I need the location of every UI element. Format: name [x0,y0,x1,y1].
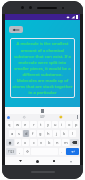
button[interactable]: t [38,121,44,128]
staticText: l [72,131,74,136]
staticText: n [56,140,59,145]
button[interactable]: m [62,139,69,146]
staticText: u [54,122,57,127]
button[interactable]: Recent apps [51,158,57,164]
button[interactable]: ?123 [6,148,16,155]
button[interactable]: v [38,139,45,146]
staticText: i [61,122,63,127]
staticText: q [8,122,11,127]
button[interactable]: Back [9,26,23,33]
button[interactable]: f [30,130,36,137]
button[interactable]: . [59,148,65,155]
staticText: k [63,131,66,136]
button[interactable]: 🙂 [59,115,63,119]
button[interactable]: GIF [40,115,45,119]
button[interactable]: Hide keyboard [68,159,73,164]
button[interactable]: A molecule is the smallest amount of a c… [12,41,73,95]
button[interactable]: o [66,121,72,128]
button[interactable]: a [9,130,15,137]
button[interactable]: q [6,121,13,128]
staticText: x [24,140,27,145]
staticText: p [75,122,78,127]
staticText: f [32,131,34,136]
staticText: c [33,140,35,145]
button[interactable]: u [52,121,58,128]
staticText: . [61,149,63,154]
staticText: b [48,140,51,145]
button[interactable]: y [45,121,51,128]
staticText: v [40,140,43,145]
staticText: s [18,131,20,136]
staticText: g [39,131,42,136]
staticText: w [16,122,20,127]
staticText: A molecule is the smallest amount of a c… [12,41,73,95]
button[interactable]: l [69,130,76,137]
staticText: j [56,131,58,136]
button[interactable]: Backspace [70,139,79,146]
button[interactable]: n [54,139,61,146]
button[interactable]: k [61,130,68,137]
button[interactable]: Enter [66,148,79,155]
staticText: m [64,140,68,145]
button[interactable]: Settings [24,148,30,155]
staticText: e [24,122,27,127]
staticText: o [68,122,71,127]
button[interactable]: Back [17,158,23,164]
button[interactable]: Home [34,158,40,164]
button[interactable]: p [73,121,79,128]
button[interactable]: z [15,139,21,146]
button[interactable]: w [14,121,21,128]
button[interactable]: i [59,121,65,128]
staticText: y [47,122,50,127]
staticText: ?123 [8,150,15,154]
button[interactable]: Google [7,116,10,119]
staticText: h [47,131,50,136]
button[interactable]: e [22,121,29,128]
button[interactable]: g [37,130,44,137]
staticText: r [33,122,35,127]
button[interactable]: r [30,121,37,128]
button[interactable]: d [23,130,29,137]
staticText: t [40,122,42,127]
button[interactable]: c [30,139,37,146]
button[interactable]: Shift [6,139,14,146]
staticText: , [19,149,21,154]
button[interactable]: h [45,130,52,137]
staticText: z [17,140,19,145]
button[interactable]: x [22,139,29,146]
button[interactable]: Search [23,116,26,119]
button[interactable]: , [17,148,23,155]
staticText: a [11,131,14,136]
button[interactable]: j [53,130,60,137]
button[interactable]: b [46,139,53,146]
staticText: d [25,131,28,136]
button[interactable]: s [16,130,22,137]
